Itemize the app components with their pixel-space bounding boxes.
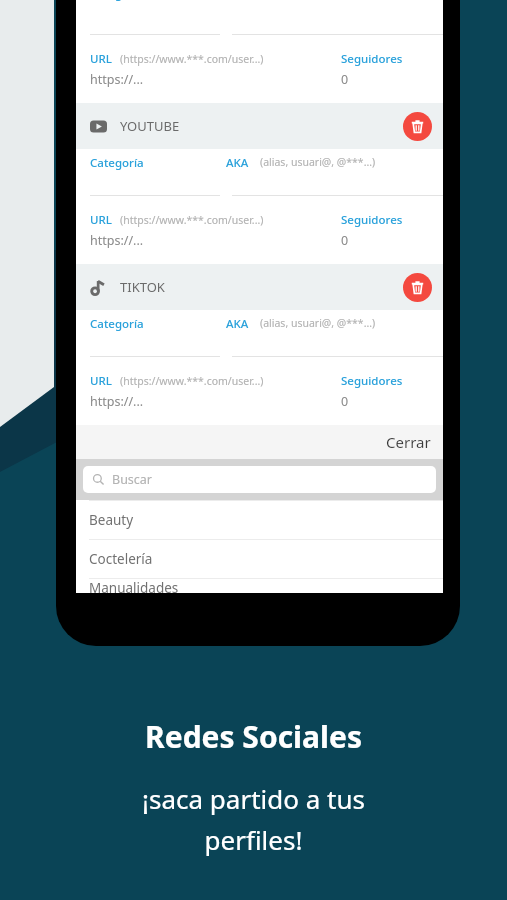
staticText: Categoría [90,316,144,332]
staticText: (alias, usuari@, @***...) [260,316,376,330]
staticText: (alias, usuari@, @***...) [260,155,376,169]
button[interactable]: Categoría [76,149,443,207]
staticText: (https://www.***.com/user...) [120,374,264,388]
button[interactable]: YOUTUBE [76,103,443,149]
staticText: Beauty [89,511,134,529]
staticText: Manualidades [89,579,179,593]
button[interactable]: Manualidades [76,578,443,593]
staticText: YOUTUBE [120,117,180,135]
staticText: Coctelería [89,550,153,568]
button[interactable]: Eliminar [403,273,432,302]
staticText: (https://www.***.com/user...) [120,213,264,227]
staticText: Redes Sociales [0,716,507,757]
staticText: Categoría [90,155,144,171]
staticText: Seguidores [341,373,403,389]
staticText: URL [90,212,112,228]
staticText: AKA [226,316,249,332]
staticText: AKA [226,155,249,171]
staticText: (https://www.***.com/user...) [120,52,264,66]
staticText: https://... [90,71,144,88]
button[interactable]: Buscar [83,466,436,493]
staticText: Seguidores [341,51,403,67]
staticText: https://... [90,232,144,249]
staticText: URL [90,51,112,67]
button[interactable]: Beauty [76,500,443,539]
staticText: 0 [341,393,349,410]
staticText: ¡saca partido a tus perfiles! [0,781,507,858]
button[interactable]: URL [76,207,443,264]
staticText: https://... [90,393,144,410]
button[interactable]: Cerrar [76,425,443,459]
button[interactable]: URL [76,368,443,425]
staticText: URL [90,373,112,389]
staticText: Seguidores [341,212,403,228]
button[interactable]: Coctelería [76,539,443,578]
staticText: Buscar [112,471,153,488]
button[interactable]: Categoría [76,310,443,368]
staticText: 0 [341,232,349,249]
button[interactable]: Eliminar [403,112,432,141]
button[interactable]: Categoría [76,0,443,46]
staticText: TIKTOK [120,278,165,296]
staticText: 0 [341,71,349,88]
staticText: Categoría [90,0,144,2]
button[interactable]: URL [76,46,443,103]
button[interactable]: TIKTOK [76,264,443,310]
staticText: Cerrar [386,432,431,452]
